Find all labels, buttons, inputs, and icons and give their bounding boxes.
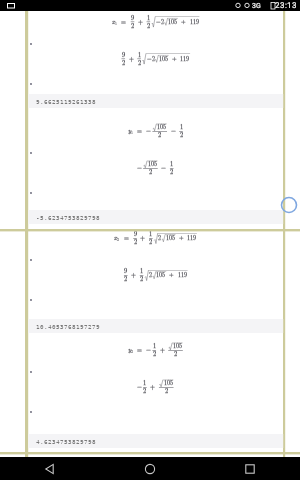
button[interactable]: Home <box>100 457 200 480</box>
button[interactable] <box>0 11 300 457</box>
button[interactable]: Recent apps <box>200 457 300 480</box>
button[interactable]: Back <box>0 457 100 480</box>
